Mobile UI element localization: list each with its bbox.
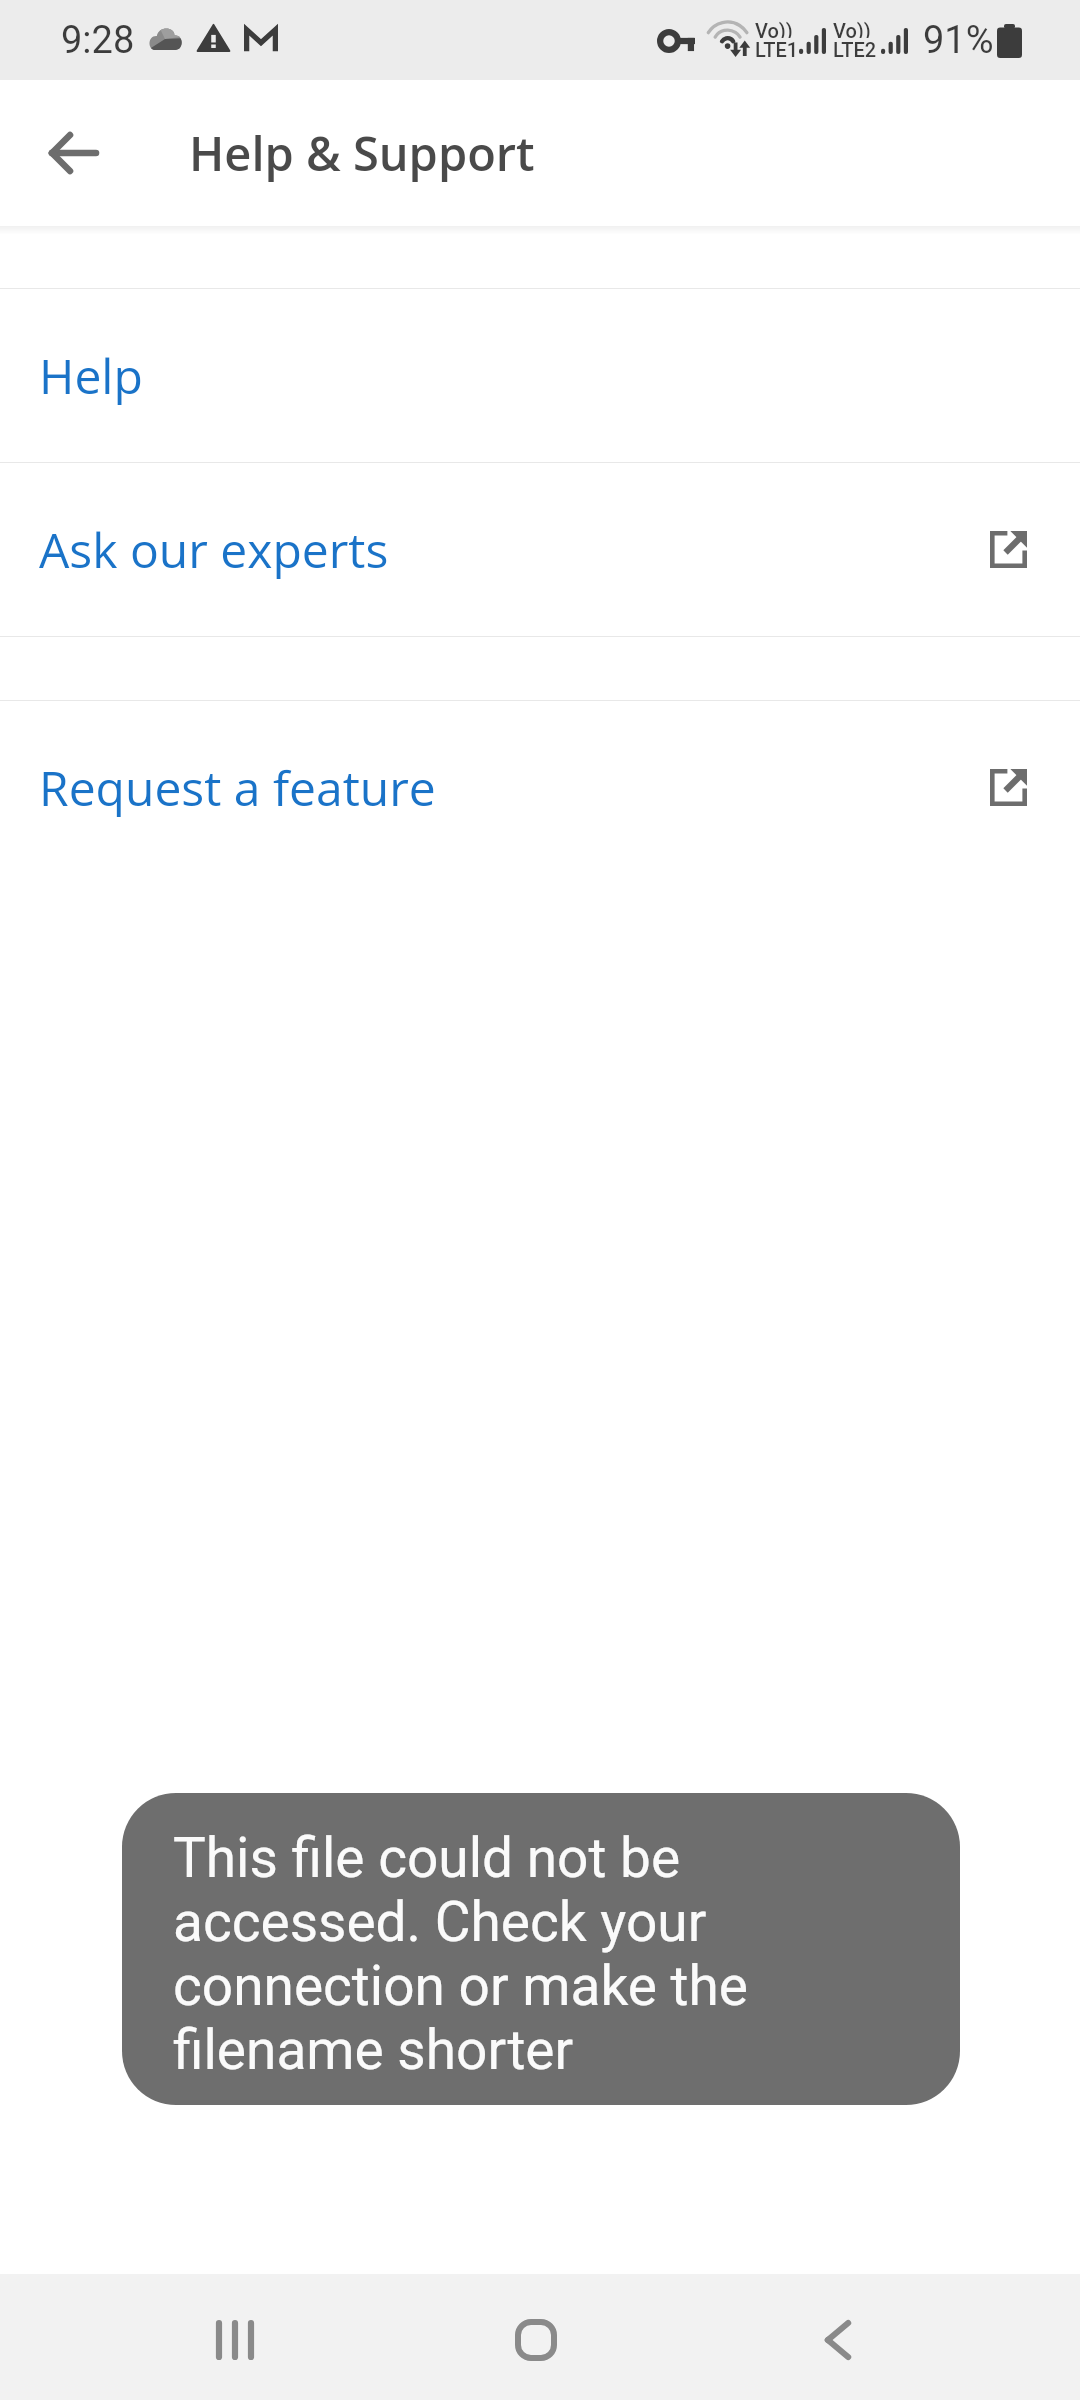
staticText: Ask our experts bbox=[39, 517, 389, 582]
staticText: LTE2 bbox=[833, 38, 877, 61]
button[interactable]: Back bbox=[28, 108, 118, 198]
staticText: Vo)) bbox=[755, 19, 793, 38]
staticText: 91% bbox=[923, 18, 994, 63]
button[interactable]: Request a feature bbox=[0, 701, 1080, 874]
button[interactable]: Ask our experts bbox=[0, 463, 1080, 636]
staticText: Help bbox=[39, 343, 143, 408]
staticText: Vo)) bbox=[833, 19, 871, 38]
staticText: Request a feature bbox=[39, 755, 436, 820]
button[interactable]: Recent apps bbox=[173, 2280, 293, 2400]
staticText: Help & Support bbox=[189, 121, 535, 185]
button[interactable]: Help bbox=[0, 289, 1080, 462]
staticText: 9:28 bbox=[61, 18, 135, 63]
button[interactable]: Back bbox=[778, 2280, 898, 2400]
staticText: LTE1 bbox=[755, 38, 799, 61]
staticText: This file could not be accessed. Check y… bbox=[173, 1826, 793, 2082]
button[interactable]: Home bbox=[476, 2280, 596, 2400]
